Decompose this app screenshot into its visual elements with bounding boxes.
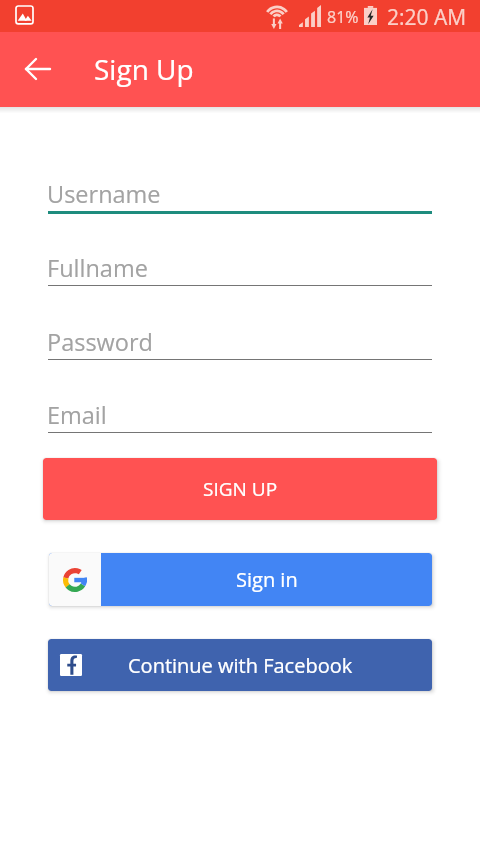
staticText: 2:20 AM: [387, 3, 467, 32]
staticText: Sign in: [236, 566, 298, 593]
button[interactable]: Back: [20, 51, 56, 87]
button[interactable]: SIGN UP: [43, 458, 437, 520]
staticText: Username: [47, 178, 161, 210]
staticText: Sign Up: [94, 50, 194, 88]
staticText: Email: [47, 399, 107, 431]
staticText: Password: [47, 326, 153, 358]
button[interactable]: Sign in: [49, 553, 432, 606]
staticText: Fullname: [47, 252, 148, 284]
button[interactable]: Continue with Facebook: [48, 639, 432, 691]
staticText: Continue with Facebook: [128, 652, 353, 679]
staticText: SIGN UP: [203, 476, 278, 502]
staticText: 81%: [327, 6, 359, 28]
